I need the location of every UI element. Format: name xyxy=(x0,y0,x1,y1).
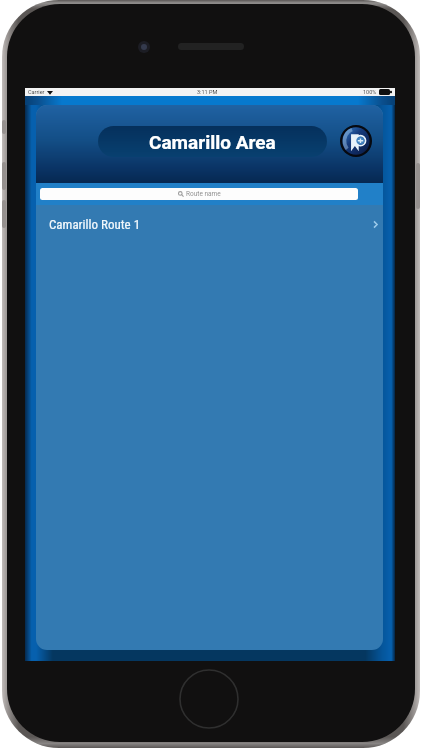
staticText: Carrier xyxy=(28,89,45,95)
button[interactable]: Route name xyxy=(40,188,358,200)
staticText: Camarillo Area xyxy=(149,131,276,153)
staticText: Camarillo Route 1 xyxy=(49,217,141,232)
button[interactable]: Camarillo Area xyxy=(98,126,327,157)
staticText: 100% xyxy=(363,89,377,95)
staticText: Route name xyxy=(186,190,221,198)
staticText: 3:11 PM xyxy=(197,89,218,95)
button[interactable]: Camarillo Route 1 xyxy=(36,205,383,244)
button[interactable]: Saved routes xyxy=(340,125,372,157)
